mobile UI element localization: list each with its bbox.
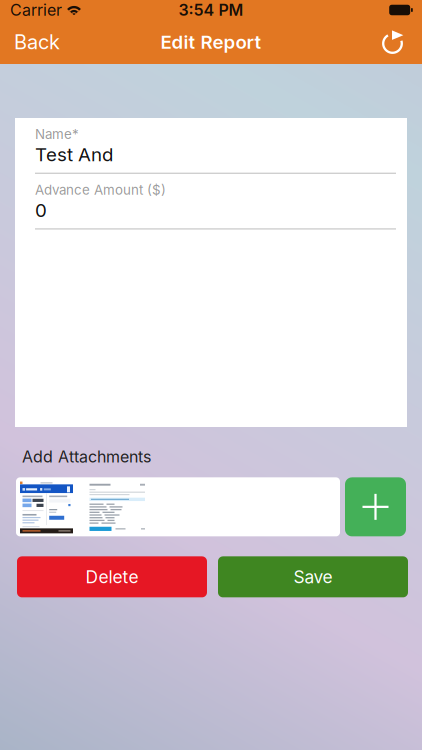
staticText: 3:54 PM <box>178 0 243 20</box>
button[interactable]: Back <box>0 20 74 64</box>
staticText: Add Attachments <box>22 447 151 466</box>
button[interactable]: Add attachment <box>345 477 406 536</box>
staticText: Test And <box>35 143 113 166</box>
staticText: Name* <box>35 126 79 142</box>
button[interactable]: Save <box>218 556 408 597</box>
staticText: Save <box>293 566 332 587</box>
staticText: Delete <box>85 566 138 587</box>
button[interactable]: Refresh <box>368 20 422 64</box>
staticText: Advance Amount ($) <box>35 182 166 198</box>
staticText: Edit Report <box>160 31 261 53</box>
staticText: Back <box>14 30 60 54</box>
button[interactable]: Delete <box>17 556 207 597</box>
staticText: Carrier <box>10 0 62 20</box>
staticText: 0 <box>35 199 47 221</box>
